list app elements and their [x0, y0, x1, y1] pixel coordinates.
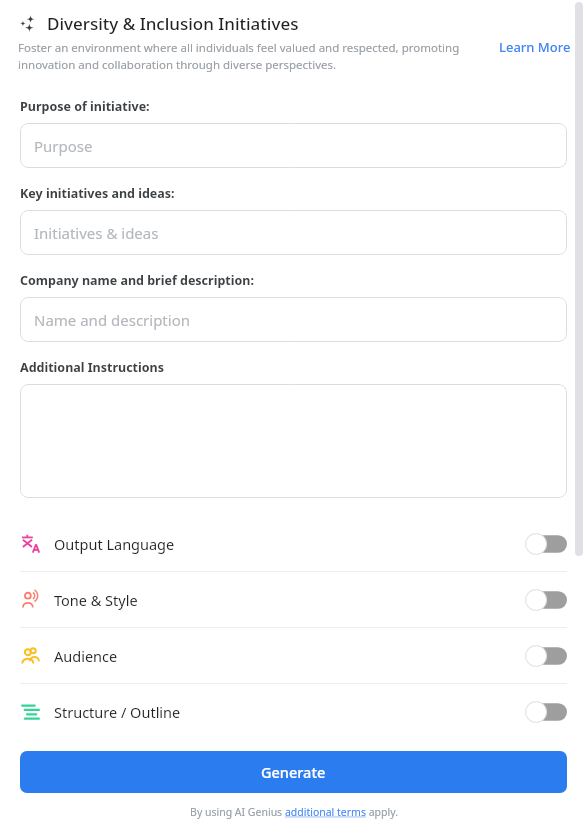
staticText: Generate — [261, 762, 326, 782]
staticText: Purpose of initiative: — [20, 98, 150, 115]
staticText: Foster an environment where all individu… — [18, 40, 470, 72]
button[interactable]: Audience — [0, 628, 587, 683]
button[interactable]: Structure / Outline — [0, 684, 587, 739]
staticText: By using AI Genius additional terms appl… — [190, 805, 398, 819]
staticText: Name and description — [34, 310, 191, 330]
staticText: Company name and brief description: — [20, 272, 254, 289]
button[interactable]: Tone & Style — [0, 572, 587, 627]
button[interactable]: Purpose — [20, 123, 567, 168]
other: Toggle — [525, 701, 567, 723]
staticText: Key initiatives and ideas: — [20, 185, 175, 202]
staticText: Initiatives & ideas — [34, 223, 159, 243]
button[interactable]: Output Language — [0, 516, 587, 571]
button[interactable] — [20, 384, 567, 498]
button[interactable]: Generate — [20, 751, 567, 793]
staticText: Tone & Style — [54, 590, 138, 610]
staticText: Purpose — [34, 136, 93, 156]
staticText: Audience — [54, 646, 118, 666]
button[interactable]: Name and description — [20, 297, 567, 342]
staticText: Output Language — [54, 534, 175, 554]
other: Toggle — [525, 533, 567, 555]
staticText: Learn More — [499, 38, 571, 56]
button[interactable]: Learn More — [497, 36, 573, 58]
staticText: Structure / Outline — [54, 702, 181, 722]
staticText: Diversity & Inclusion Initiatives — [47, 12, 299, 35]
staticText: Additional Instructions — [20, 359, 164, 376]
other: Toggle — [525, 589, 567, 611]
button[interactable]: Initiatives & ideas — [20, 210, 567, 255]
other: Toggle — [525, 645, 567, 667]
